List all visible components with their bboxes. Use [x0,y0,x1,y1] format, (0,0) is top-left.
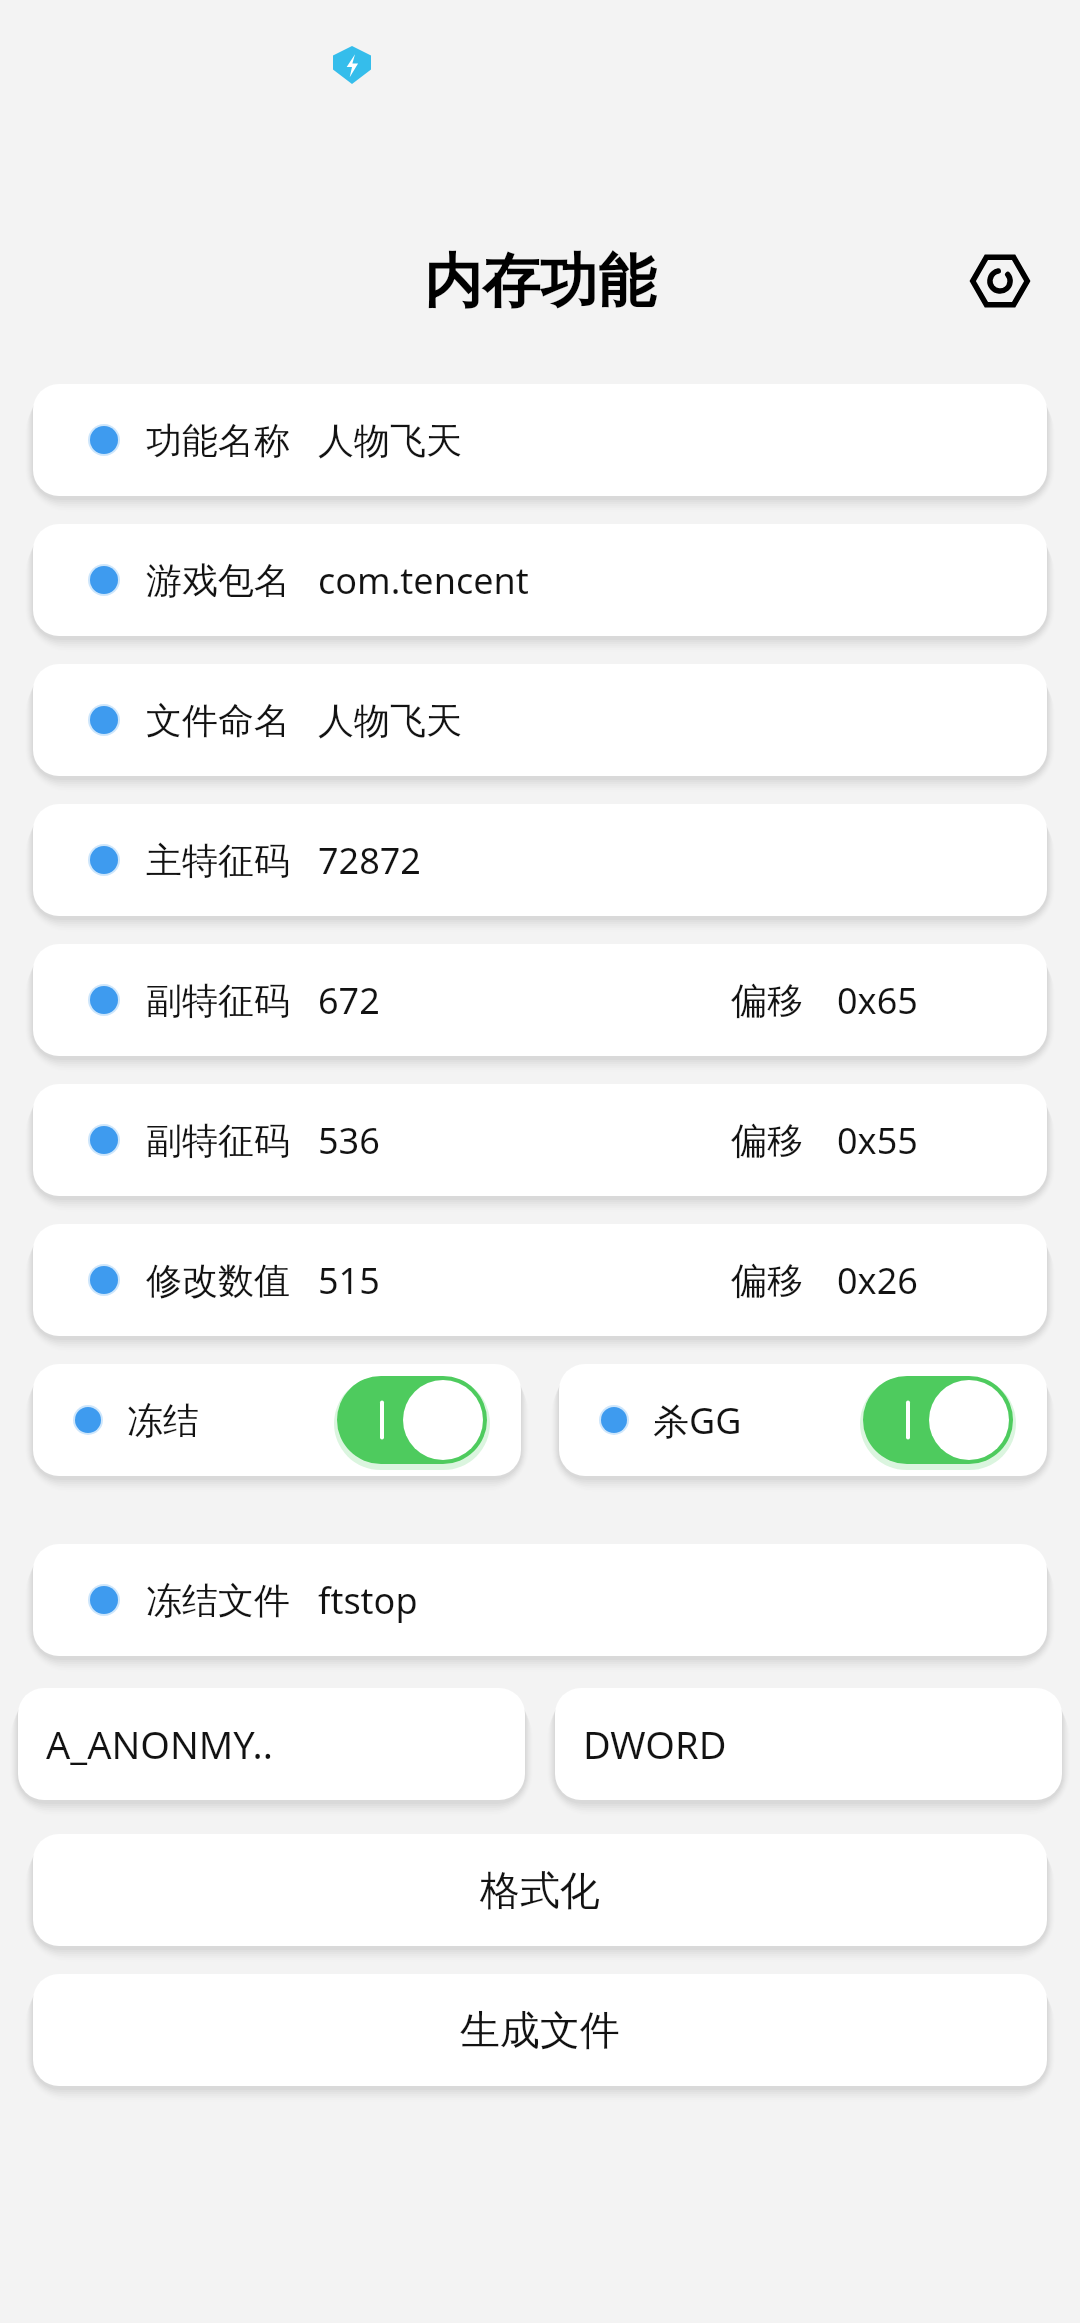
other: Toggle on [337,1376,487,1464]
staticText: 偏移 [731,1118,803,1163]
staticText: 文件命名 [146,698,290,743]
button[interactable]: 杀GG [559,1364,1047,1476]
staticText: ftstop [318,1576,418,1625]
staticText: 生成文件 [460,2005,620,2055]
staticText: 格式化 [480,1865,600,1915]
other: Toggle on [863,1376,1013,1464]
button[interactable]: 文件命名 [33,664,1047,776]
staticText: 修改数值 [146,1258,290,1303]
button[interactable]: Refresh [960,241,1040,321]
staticText: com.tencent [318,556,529,605]
staticText: 冻结文件 [146,1578,290,1623]
button[interactable]: 修改数值 [33,1224,1047,1336]
staticText: 672 [318,976,380,1025]
staticText: 偏移 [731,1258,803,1303]
staticText: 偏移 [731,978,803,1023]
button[interactable]: 格式化 [33,1834,1047,1946]
button[interactable]: 功能名称 [33,384,1047,496]
button[interactable]: 冻结 [33,1364,521,1476]
staticText: 515 [318,1256,380,1305]
staticText: 72872 [318,836,421,885]
staticText: 内存功能 [424,245,656,318]
staticText: DWORD [583,1718,727,1770]
button[interactable]: A_ANONMY.. [18,1688,525,1800]
staticText: 功能名称 [146,418,290,463]
staticText: 0x65 [837,976,918,1025]
button[interactable]: 冻结文件 [33,1544,1047,1656]
staticText: 人物飞天 [318,418,462,463]
button[interactable]: 生成文件 [33,1974,1047,2086]
staticText: 主特征码 [146,838,290,883]
staticText: 536 [318,1116,380,1165]
staticText: 副特征码 [146,1118,290,1163]
staticText: 人物飞天 [318,698,462,743]
staticText: 副特征码 [146,978,290,1023]
staticText: A_ANONMY.. [46,1718,273,1770]
button[interactable]: DWORD [555,1688,1062,1800]
button[interactable]: 主特征码 [33,804,1047,916]
staticText: 0x55 [837,1116,918,1165]
button[interactable]: 副特征码 [33,1084,1047,1196]
staticText: 杀GG [653,1396,742,1445]
staticText: 游戏包名 [146,558,290,603]
staticText: 0x26 [837,1256,918,1305]
button[interactable]: 游戏包名 [33,524,1047,636]
button[interactable]: 副特征码 [33,944,1047,1056]
staticText: 冻结 [127,1398,199,1443]
